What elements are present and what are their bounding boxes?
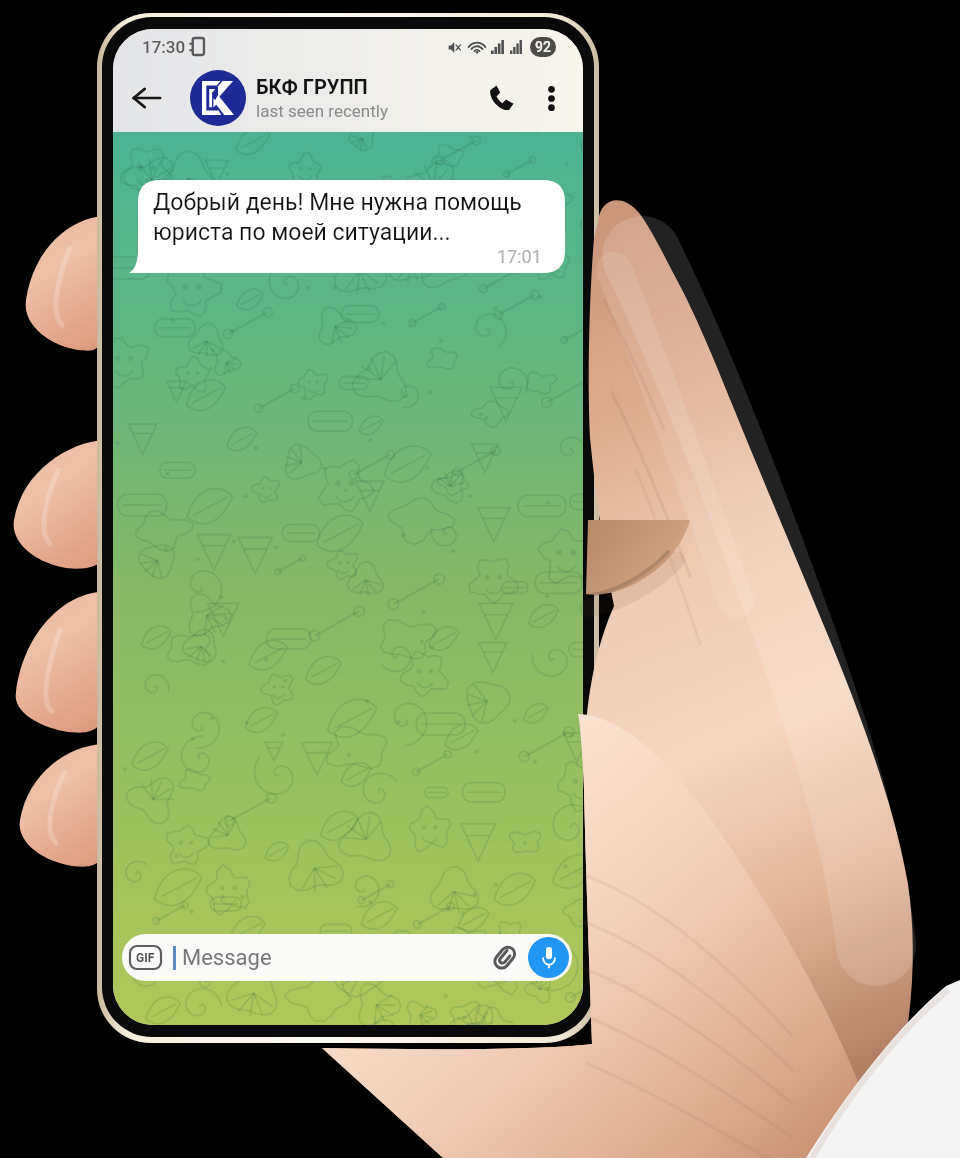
- button[interactable]: Back: [119, 71, 173, 125]
- staticText: БКФ ГРУПП: [256, 75, 368, 98]
- button[interactable]: Добрый день! Мне нужна помощь: [120, 180, 565, 273]
- staticText: Message: [182, 945, 272, 971]
- staticText: last seen recently: [256, 101, 388, 121]
- button[interactable]: Attach file: [484, 938, 524, 978]
- button[interactable]: Record voice message: [528, 937, 569, 978]
- button[interactable]: More options: [529, 76, 573, 120]
- button[interactable]: GIF: [130, 946, 161, 969]
- staticText: 17:30: [142, 37, 186, 57]
- staticText: GIF: [136, 951, 155, 965]
- staticText: Добрый день! Мне нужна помощь: [153, 189, 522, 216]
- staticText: юриста по моей ситуации...: [153, 219, 451, 246]
- staticText: 92: [535, 39, 551, 55]
- button[interactable]: Call: [477, 74, 525, 122]
- staticText: 17:01: [497, 246, 542, 267]
- button[interactable]: Open profile: [190, 70, 246, 126]
- button[interactable]: GIF: [122, 934, 572, 981]
